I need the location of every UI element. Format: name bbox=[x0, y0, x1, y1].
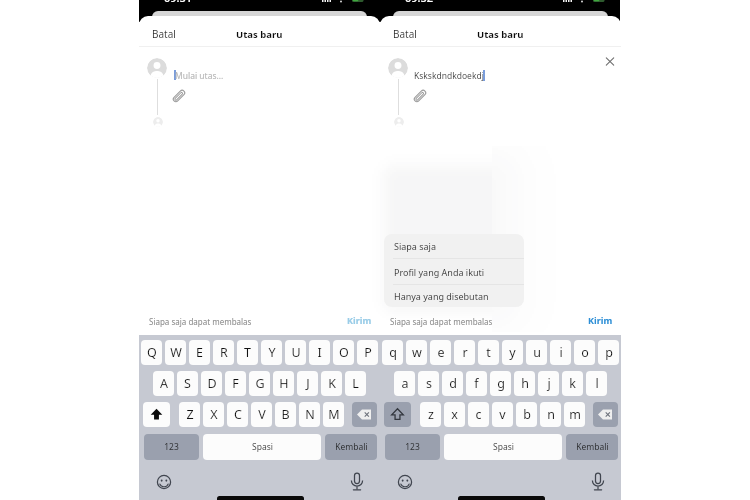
staticText: Kskskdndkdoekdj bbox=[414, 70, 484, 82]
button[interactable]: Hapus bbox=[352, 402, 377, 427]
button[interactable]: Kirim bbox=[347, 313, 372, 327]
button[interactable]: j bbox=[538, 371, 559, 396]
button[interactable]: Kembali bbox=[325, 434, 377, 460]
button[interactable]: Z bbox=[179, 402, 200, 427]
button[interactable]: i bbox=[550, 340, 571, 365]
button[interactable]: Hapus bbox=[593, 402, 618, 427]
button[interactable]: m bbox=[564, 402, 585, 427]
button[interactable]: h bbox=[514, 371, 535, 396]
staticText: S bbox=[184, 375, 191, 392]
button[interactable]: Siapa saja dapat membalas bbox=[149, 314, 252, 328]
button[interactable]: q bbox=[382, 340, 403, 365]
button[interactable]: c bbox=[468, 402, 489, 427]
button[interactable]: l bbox=[586, 371, 607, 396]
staticText: Siapa saja bbox=[394, 240, 436, 252]
staticText: O bbox=[339, 344, 349, 361]
button[interactable]: s bbox=[418, 371, 439, 396]
button[interactable]: 123 bbox=[144, 434, 199, 460]
button[interactable]: Kembali bbox=[566, 434, 618, 460]
button[interactable]: a bbox=[394, 371, 415, 396]
button[interactable]: P bbox=[357, 340, 378, 365]
staticText: Q bbox=[147, 344, 157, 361]
button[interactable]: Emoji bbox=[391, 468, 419, 496]
staticText: E bbox=[196, 344, 203, 361]
button[interactable]: C bbox=[227, 402, 248, 427]
button[interactable]: Tutup bbox=[600, 53, 618, 71]
button[interactable]: Batal bbox=[393, 26, 417, 42]
staticText: Mulai utas... bbox=[175, 70, 224, 82]
button[interactable]: T bbox=[237, 340, 258, 365]
staticText: j bbox=[547, 375, 551, 392]
button[interactable]: u bbox=[526, 340, 547, 365]
button[interactable]: D bbox=[201, 371, 222, 396]
button[interactable]: R bbox=[213, 340, 234, 365]
button[interactable]: Batal bbox=[152, 26, 176, 42]
button[interactable]: Shift bbox=[143, 402, 170, 427]
staticText: b bbox=[523, 406, 531, 423]
button[interactable]: Hanya yang disebutan bbox=[384, 285, 524, 307]
staticText: D bbox=[207, 375, 217, 392]
button[interactable]: X bbox=[203, 402, 224, 427]
button[interactable]: w bbox=[406, 340, 427, 365]
button[interactable]: Y bbox=[261, 340, 282, 365]
button[interactable]: S bbox=[177, 371, 198, 396]
button[interactable]: Shift bbox=[384, 402, 411, 427]
button[interactable]: U bbox=[285, 340, 306, 365]
button[interactable]: b bbox=[516, 402, 537, 427]
button[interactable]: M bbox=[323, 402, 344, 427]
button[interactable]: I bbox=[309, 340, 330, 365]
button[interactable]: Dikte bbox=[343, 468, 371, 496]
staticText: f bbox=[474, 375, 479, 392]
button[interactable]: L bbox=[345, 371, 366, 396]
staticText: V bbox=[258, 406, 266, 423]
staticText: R bbox=[220, 344, 228, 361]
button[interactable]: E bbox=[189, 340, 210, 365]
staticText: n bbox=[547, 406, 555, 423]
staticText: K bbox=[328, 375, 336, 392]
button[interactable]: F bbox=[225, 371, 246, 396]
button[interactable]: Kirim bbox=[588, 313, 613, 327]
button[interactable]: p bbox=[598, 340, 619, 365]
button[interactable]: y bbox=[502, 340, 523, 365]
button[interactable]: o bbox=[574, 340, 595, 365]
staticText: C bbox=[234, 406, 242, 423]
button[interactable]: z bbox=[420, 402, 441, 427]
button[interactable]: d bbox=[442, 371, 463, 396]
button[interactable]: Q bbox=[141, 340, 162, 365]
button[interactable]: W bbox=[165, 340, 186, 365]
staticText: U bbox=[291, 344, 301, 361]
button[interactable]: K bbox=[321, 371, 342, 396]
button[interactable]: B bbox=[275, 402, 296, 427]
button[interactable]: Emoji bbox=[150, 468, 178, 496]
staticText: l bbox=[595, 375, 599, 392]
button[interactable]: f bbox=[466, 371, 487, 396]
button[interactable]: t bbox=[478, 340, 499, 365]
button[interactable]: n bbox=[540, 402, 561, 427]
button[interactable]: Profil yang Anda ikuti bbox=[384, 259, 524, 284]
button[interactable]: Lampirkan bbox=[412, 88, 428, 104]
button[interactable]: Dikte bbox=[584, 468, 612, 496]
button[interactable]: Siapa saja dapat membalas bbox=[390, 314, 493, 328]
button[interactable]: r bbox=[454, 340, 475, 365]
staticText: Hanya yang disebutan bbox=[394, 290, 489, 302]
button[interactable]: v bbox=[492, 402, 513, 427]
button[interactable]: H bbox=[273, 371, 294, 396]
button[interactable]: G bbox=[249, 371, 270, 396]
button[interactable]: Spasi bbox=[444, 434, 562, 460]
button[interactable]: k bbox=[562, 371, 583, 396]
staticText: Kembali bbox=[576, 441, 609, 453]
button[interactable]: x bbox=[444, 402, 465, 427]
button[interactable]: N bbox=[299, 402, 320, 427]
button[interactable]: J bbox=[297, 371, 318, 396]
button[interactable]: V bbox=[251, 402, 272, 427]
button[interactable]: 123 bbox=[385, 434, 440, 460]
button[interactable]: Siapa saja bbox=[384, 234, 524, 258]
button[interactable]: A bbox=[153, 371, 174, 396]
button[interactable]: Spasi bbox=[203, 434, 321, 460]
button[interactable]: Lampirkan bbox=[171, 88, 187, 104]
button[interactable]: g bbox=[490, 371, 511, 396]
button[interactable]: e bbox=[430, 340, 451, 365]
staticText: Kembali bbox=[335, 441, 368, 453]
staticText: 123 bbox=[405, 441, 420, 453]
button[interactable]: O bbox=[333, 340, 354, 365]
